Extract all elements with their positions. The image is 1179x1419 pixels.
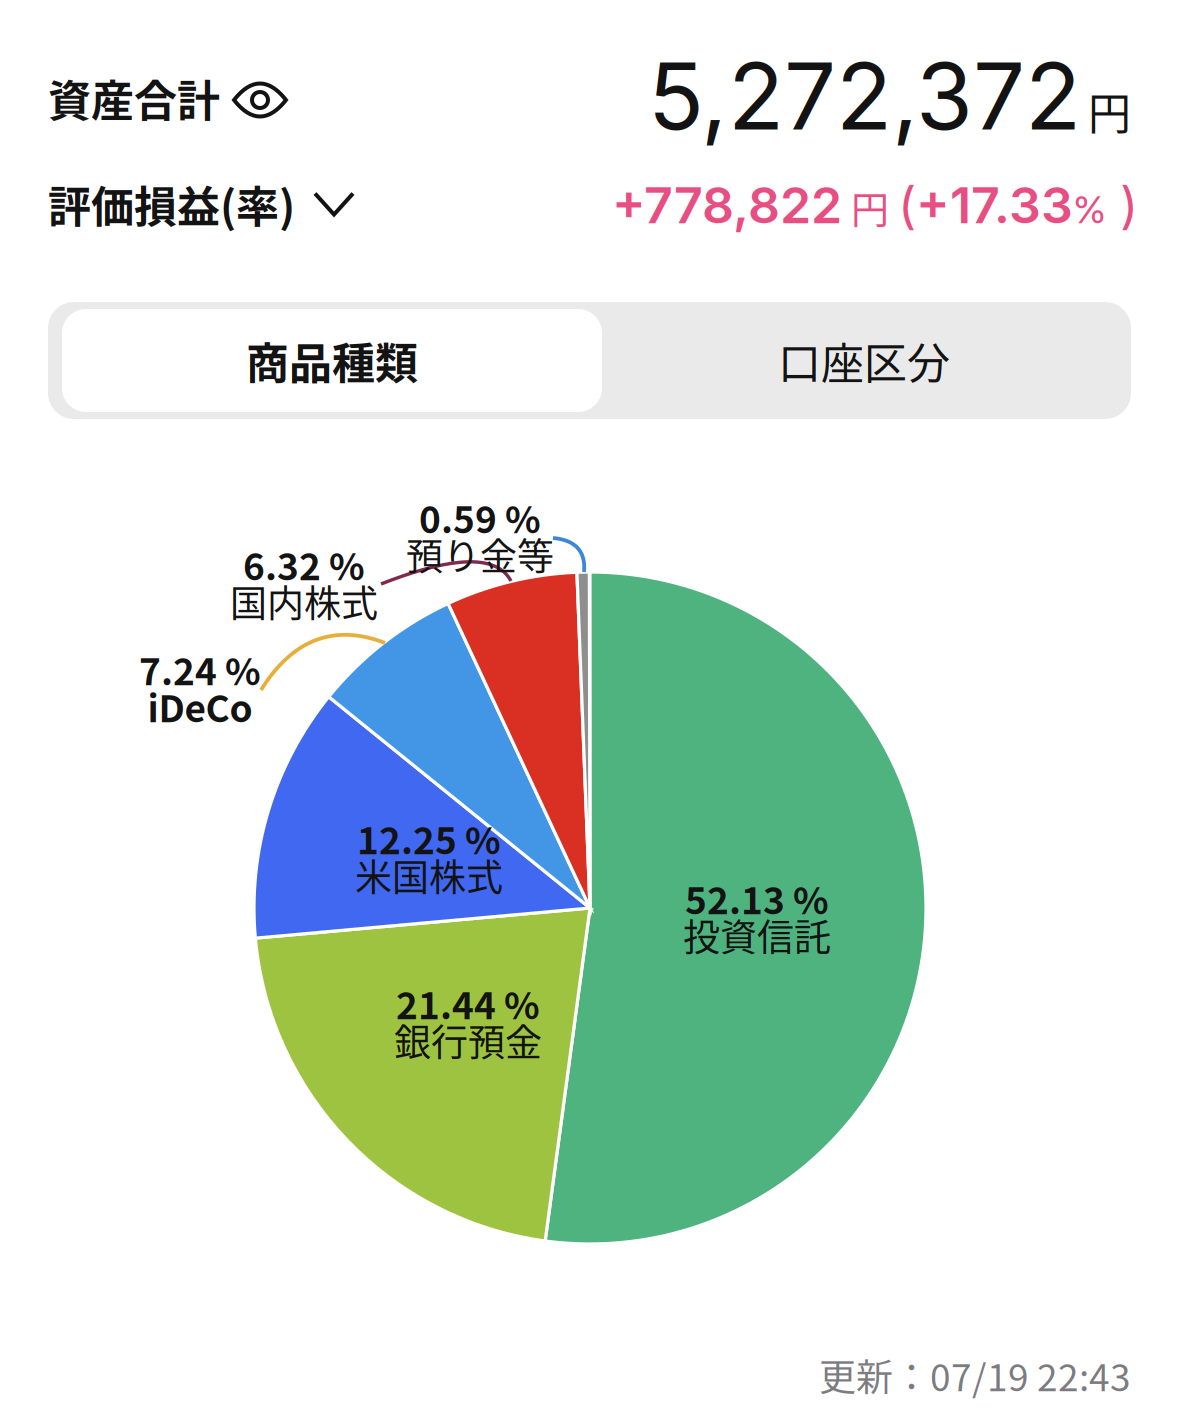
staticText: 銀行預金 [394,1013,542,1067]
staticText: 円 [842,179,898,234]
button[interactable]: 残高の表示を切り替え [224,64,296,136]
staticText: % [1073,186,1106,232]
staticText: 評価損益(率) [48,173,295,235]
staticText: 商品種類 [246,329,418,392]
staticText: 6.32 % [243,537,365,591]
staticText: 国内株式 [230,574,378,628]
staticText: 52.13 % [685,871,829,925]
staticText: 資産合計 [48,67,220,129]
staticText: 預り金等 [406,527,554,581]
button[interactable]: 商品種類 [62,309,602,412]
staticText: 5,272,372 [648,40,1081,152]
staticText: ( [898,175,916,235]
staticText: iDeCo [147,679,252,733]
staticText: 口座区分 [778,329,950,392]
staticText: 7.24 % [139,642,261,696]
staticText: 12.25 % [357,811,501,865]
staticText: +17.33 [916,175,1073,235]
button[interactable]: 口座区分 [604,309,1124,412]
staticText: 21.44 % [396,976,540,1030]
staticText: 米国株式 [355,848,503,902]
staticText: 投資信託 [683,908,831,962]
staticText: 更新：07/19 22:43 [819,1348,1131,1402]
staticText: 0.59 % [419,490,541,544]
staticText: +778,822 [612,175,842,235]
staticText: ) [1106,175,1138,235]
staticText: 円 [1088,80,1131,142]
button[interactable]: 評価損益(率) [48,168,358,240]
